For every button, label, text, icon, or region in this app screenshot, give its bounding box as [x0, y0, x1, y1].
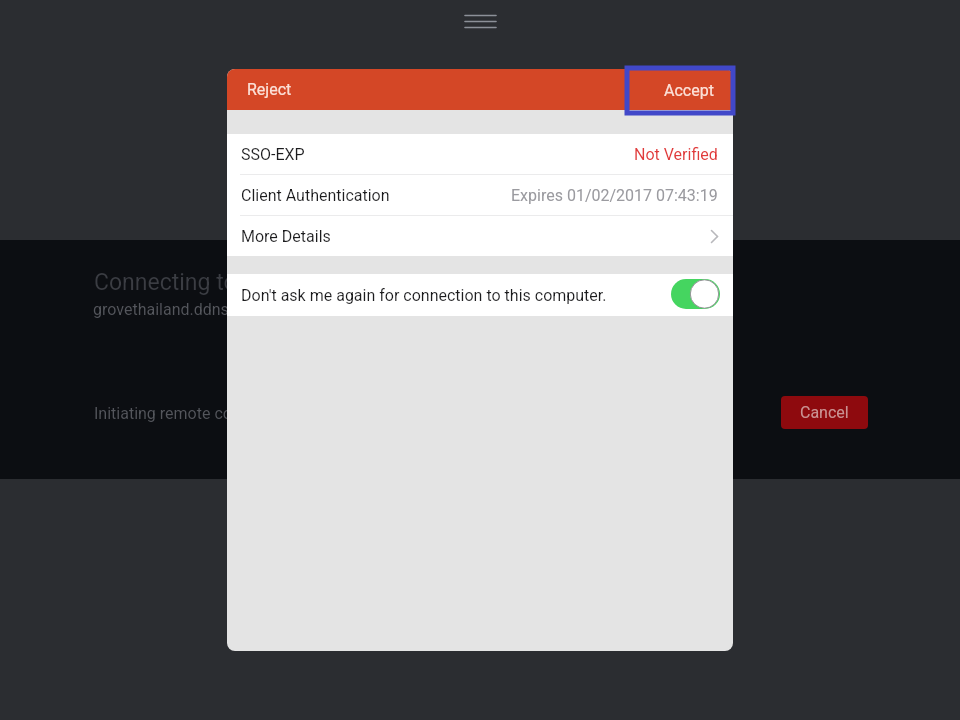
button[interactable]: SSO-EXP — [227, 134, 733, 174]
button[interactable]: Reject — [227, 69, 733, 110]
staticText: Initiating remote connection... — [94, 404, 307, 423]
staticText: grovethailand.ddns.net — [93, 300, 256, 319]
staticText: Not Verified — [634, 145, 718, 164]
button[interactable]: Don't ask me again for connection to thi… — [227, 274, 733, 316]
button[interactable]: Client Authentication — [227, 175, 733, 215]
staticText: Connecting to — [94, 269, 237, 296]
staticText: Client Authentication — [241, 186, 390, 205]
button[interactable]: Don't ask me again toggle, on — [671, 279, 720, 309]
staticText: More Details — [241, 227, 331, 246]
staticText: Reject — [247, 80, 292, 99]
button[interactable]: Menu — [465, 9, 496, 31]
button[interactable]: Cancel — [781, 396, 868, 429]
staticText: Accept — [664, 81, 714, 100]
button[interactable]: More Details — [227, 216, 733, 256]
staticText: Cancel — [800, 403, 849, 422]
staticText: Expires 01/02/2017 07:43:19 — [511, 186, 718, 205]
button[interactable]: Accept — [627, 68, 733, 113]
staticText: SSO-EXP — [241, 145, 305, 164]
staticText: Don't ask me again for connection to thi… — [241, 286, 607, 305]
